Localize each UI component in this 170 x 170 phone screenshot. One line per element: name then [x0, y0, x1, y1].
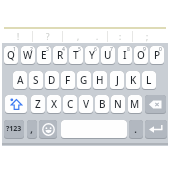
- button[interactable]: F: [61, 71, 75, 90]
- staticText: !: [17, 31, 20, 42]
- button[interactable]: [39, 120, 57, 139]
- staticText: U: [104, 48, 112, 62]
- staticText: D: [48, 73, 56, 87]
- staticText: ?: [46, 31, 50, 42]
- staticText: L: [146, 73, 152, 87]
- staticText: G: [80, 73, 88, 87]
- staticText: 6: [94, 46, 97, 53]
- staticText: ;: [146, 31, 149, 42]
- button[interactable]: D: [45, 71, 59, 90]
- button[interactable]: C: [63, 95, 77, 114]
- staticText: B: [99, 97, 106, 111]
- button[interactable]: E: [37, 46, 51, 65]
- button[interactable]: .: [129, 120, 143, 139]
- staticText: X: [51, 97, 58, 111]
- button[interactable]: V: [79, 95, 93, 114]
- staticText: ,: [77, 31, 80, 42]
- staticText: Q: [7, 48, 15, 62]
- staticText: .: [134, 121, 138, 137]
- staticText: J: [116, 73, 119, 87]
- staticText: A: [17, 73, 24, 87]
- staticText: F: [65, 73, 71, 87]
- staticText: 8: [127, 46, 130, 53]
- staticText: ,: [30, 121, 34, 137]
- staticText: 1: [13, 46, 16, 53]
- button[interactable]: K: [126, 71, 140, 90]
- staticText: V: [83, 97, 90, 111]
- button[interactable]: P: [150, 46, 164, 65]
- button[interactable]: H: [93, 71, 107, 90]
- button[interactable]: Z: [31, 95, 45, 114]
- staticText: P: [154, 48, 161, 62]
- staticText: 0: [159, 46, 162, 53]
- button[interactable]: T: [69, 46, 83, 65]
- staticText: :: [119, 31, 122, 42]
- staticText: R: [57, 48, 64, 62]
- button[interactable]: Q: [4, 46, 18, 65]
- staticText: 9: [143, 46, 146, 53]
- staticText: Z: [35, 97, 41, 111]
- staticText: .: [96, 31, 99, 42]
- button[interactable]: J: [110, 71, 124, 90]
- staticText: E: [41, 48, 47, 62]
- staticText: S: [33, 73, 39, 87]
- button[interactable]: M: [128, 95, 142, 114]
- button[interactable]: L: [142, 71, 156, 90]
- button[interactable]: [61, 120, 127, 139]
- button[interactable]: S: [29, 71, 43, 90]
- button[interactable]: B: [95, 95, 109, 114]
- staticText: H: [96, 73, 104, 87]
- staticText: 4: [62, 46, 65, 53]
- button[interactable]: I: [118, 46, 132, 65]
- button[interactable]: R: [53, 46, 67, 65]
- button[interactable]: Y: [85, 46, 99, 65]
- staticText: I: [123, 48, 127, 62]
- staticText: K: [130, 73, 137, 87]
- staticText: O: [137, 48, 145, 62]
- button[interactable]: [145, 95, 166, 114]
- staticText: 5: [78, 46, 81, 53]
- button[interactable]: A: [13, 71, 27, 90]
- staticText: 2: [30, 46, 33, 53]
- button[interactable]: O: [134, 46, 148, 65]
- staticText: T: [73, 48, 79, 62]
- button[interactable]: ,: [27, 120, 37, 139]
- button[interactable]: N: [111, 95, 125, 114]
- button[interactable]: G: [77, 71, 91, 90]
- staticText: W: [23, 48, 33, 62]
- staticText: 3: [46, 46, 49, 53]
- button[interactable]: [145, 120, 167, 139]
- button[interactable]: ?123: [4, 120, 24, 139]
- staticText: M: [130, 97, 140, 111]
- button[interactable]: X: [47, 95, 61, 114]
- button[interactable]: U: [101, 46, 115, 65]
- button[interactable]: [5, 95, 27, 114]
- button[interactable]: W: [21, 46, 35, 65]
- staticText: C: [67, 97, 74, 111]
- staticText: ?123: [6, 124, 22, 134]
- staticText: Y: [89, 48, 95, 62]
- staticText: N: [114, 97, 122, 111]
- staticText: 7: [110, 46, 113, 53]
